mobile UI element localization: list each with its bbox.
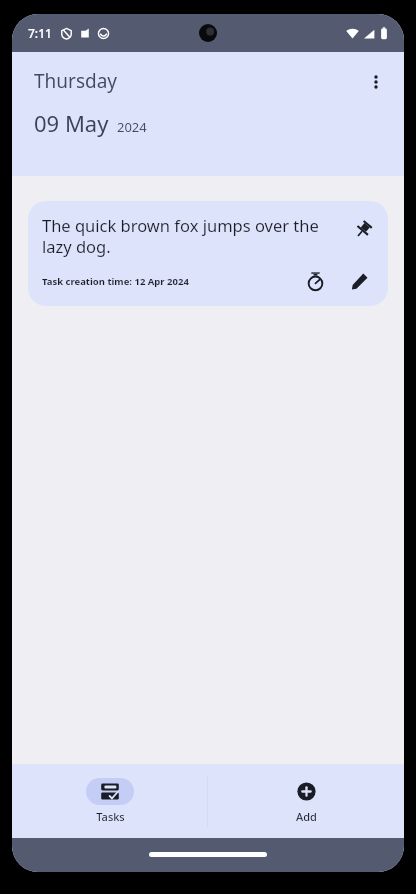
staticText: 2024 (117, 118, 147, 136)
staticText: Thursday (34, 68, 118, 94)
staticText: Task creation time: 12 Apr 2024 (42, 275, 300, 288)
button[interactable]: Edit task (344, 266, 374, 296)
button[interactable]: The quick brown fox jumps over the lazy … (28, 201, 388, 306)
button[interactable]: More options (354, 60, 398, 104)
staticText: Add (296, 809, 317, 824)
staticText: Tasks (96, 809, 125, 824)
staticText: The quick brown fox jumps over the lazy … (42, 214, 340, 258)
button[interactable]: Pin task (348, 214, 378, 244)
button[interactable]: Tasks (12, 764, 207, 838)
button[interactable]: Set timer (300, 266, 330, 296)
staticText: 09 May (34, 108, 109, 138)
staticText: 7:11 (28, 25, 52, 41)
button[interactable]: Add (208, 764, 404, 838)
